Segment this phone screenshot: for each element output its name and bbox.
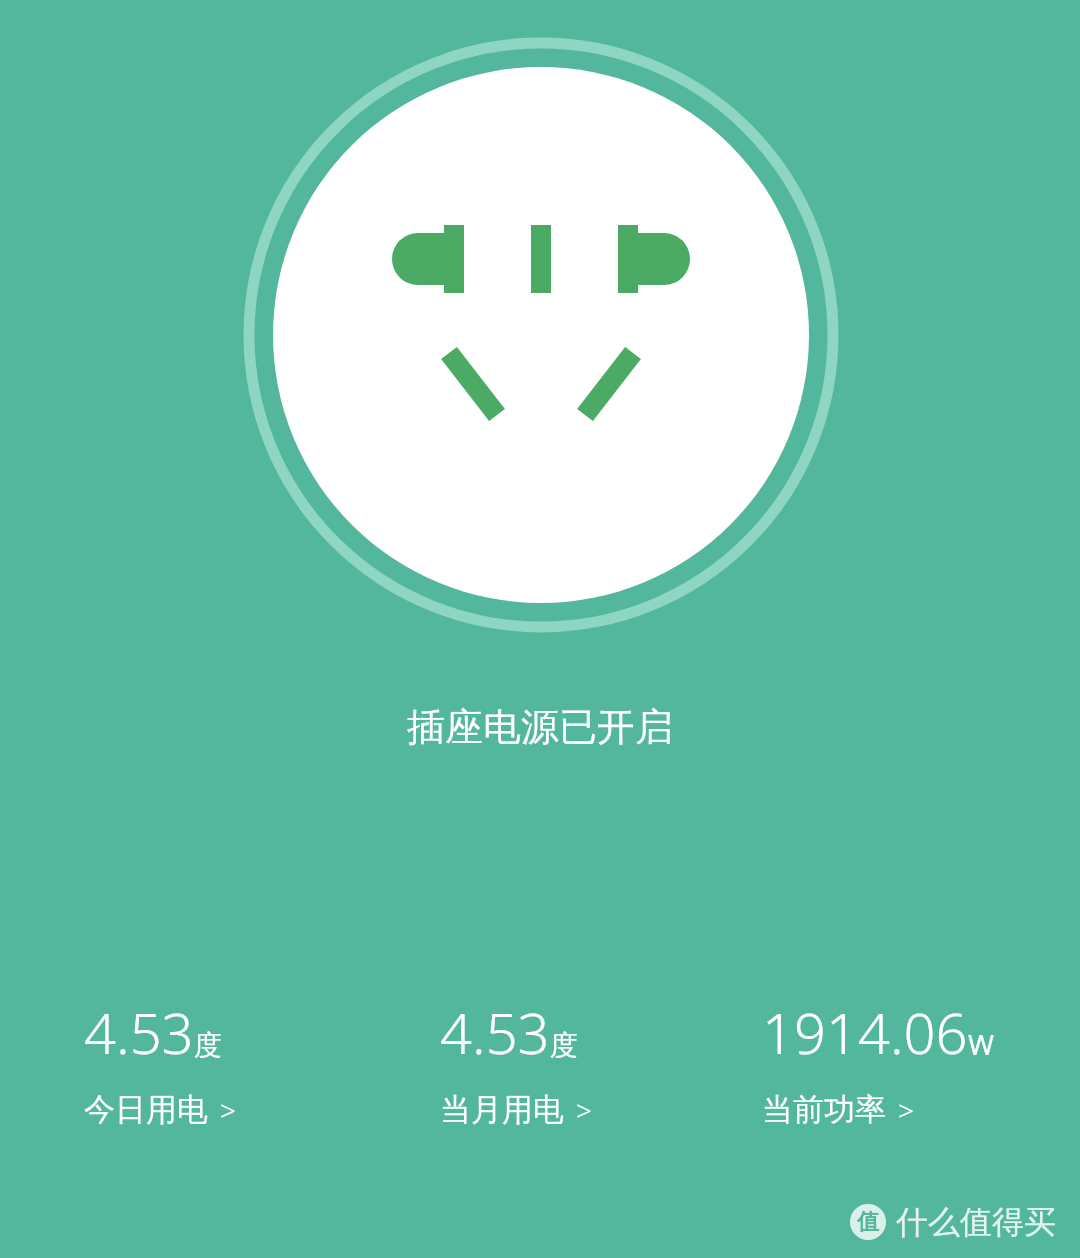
- staticText: 度: [194, 1028, 222, 1063]
- staticText: 今日用电: [84, 1090, 208, 1129]
- staticText: >: [898, 1091, 914, 1129]
- staticText: 什么值得买: [896, 1202, 1056, 1242]
- staticText: 插座电源已开启: [0, 703, 1080, 751]
- staticText: W: [968, 1025, 995, 1063]
- button[interactable]: Toggle socket power: [241, 35, 841, 635]
- staticText: 度: [550, 1028, 578, 1063]
- staticText: 1914.06: [762, 994, 968, 1070]
- staticText: 当月用电: [440, 1090, 564, 1129]
- staticText: 值: [857, 1208, 879, 1236]
- button[interactable]: 1914.06: [720, 990, 1080, 1137]
- staticText: 当前功率: [762, 1090, 886, 1129]
- staticText: >: [220, 1091, 236, 1129]
- staticText: 4.53: [84, 994, 194, 1070]
- staticText: >: [576, 1091, 592, 1129]
- staticText: 4.53: [440, 994, 550, 1070]
- button[interactable]: 4.53: [0, 990, 360, 1137]
- button[interactable]: 4.53: [360, 990, 720, 1137]
